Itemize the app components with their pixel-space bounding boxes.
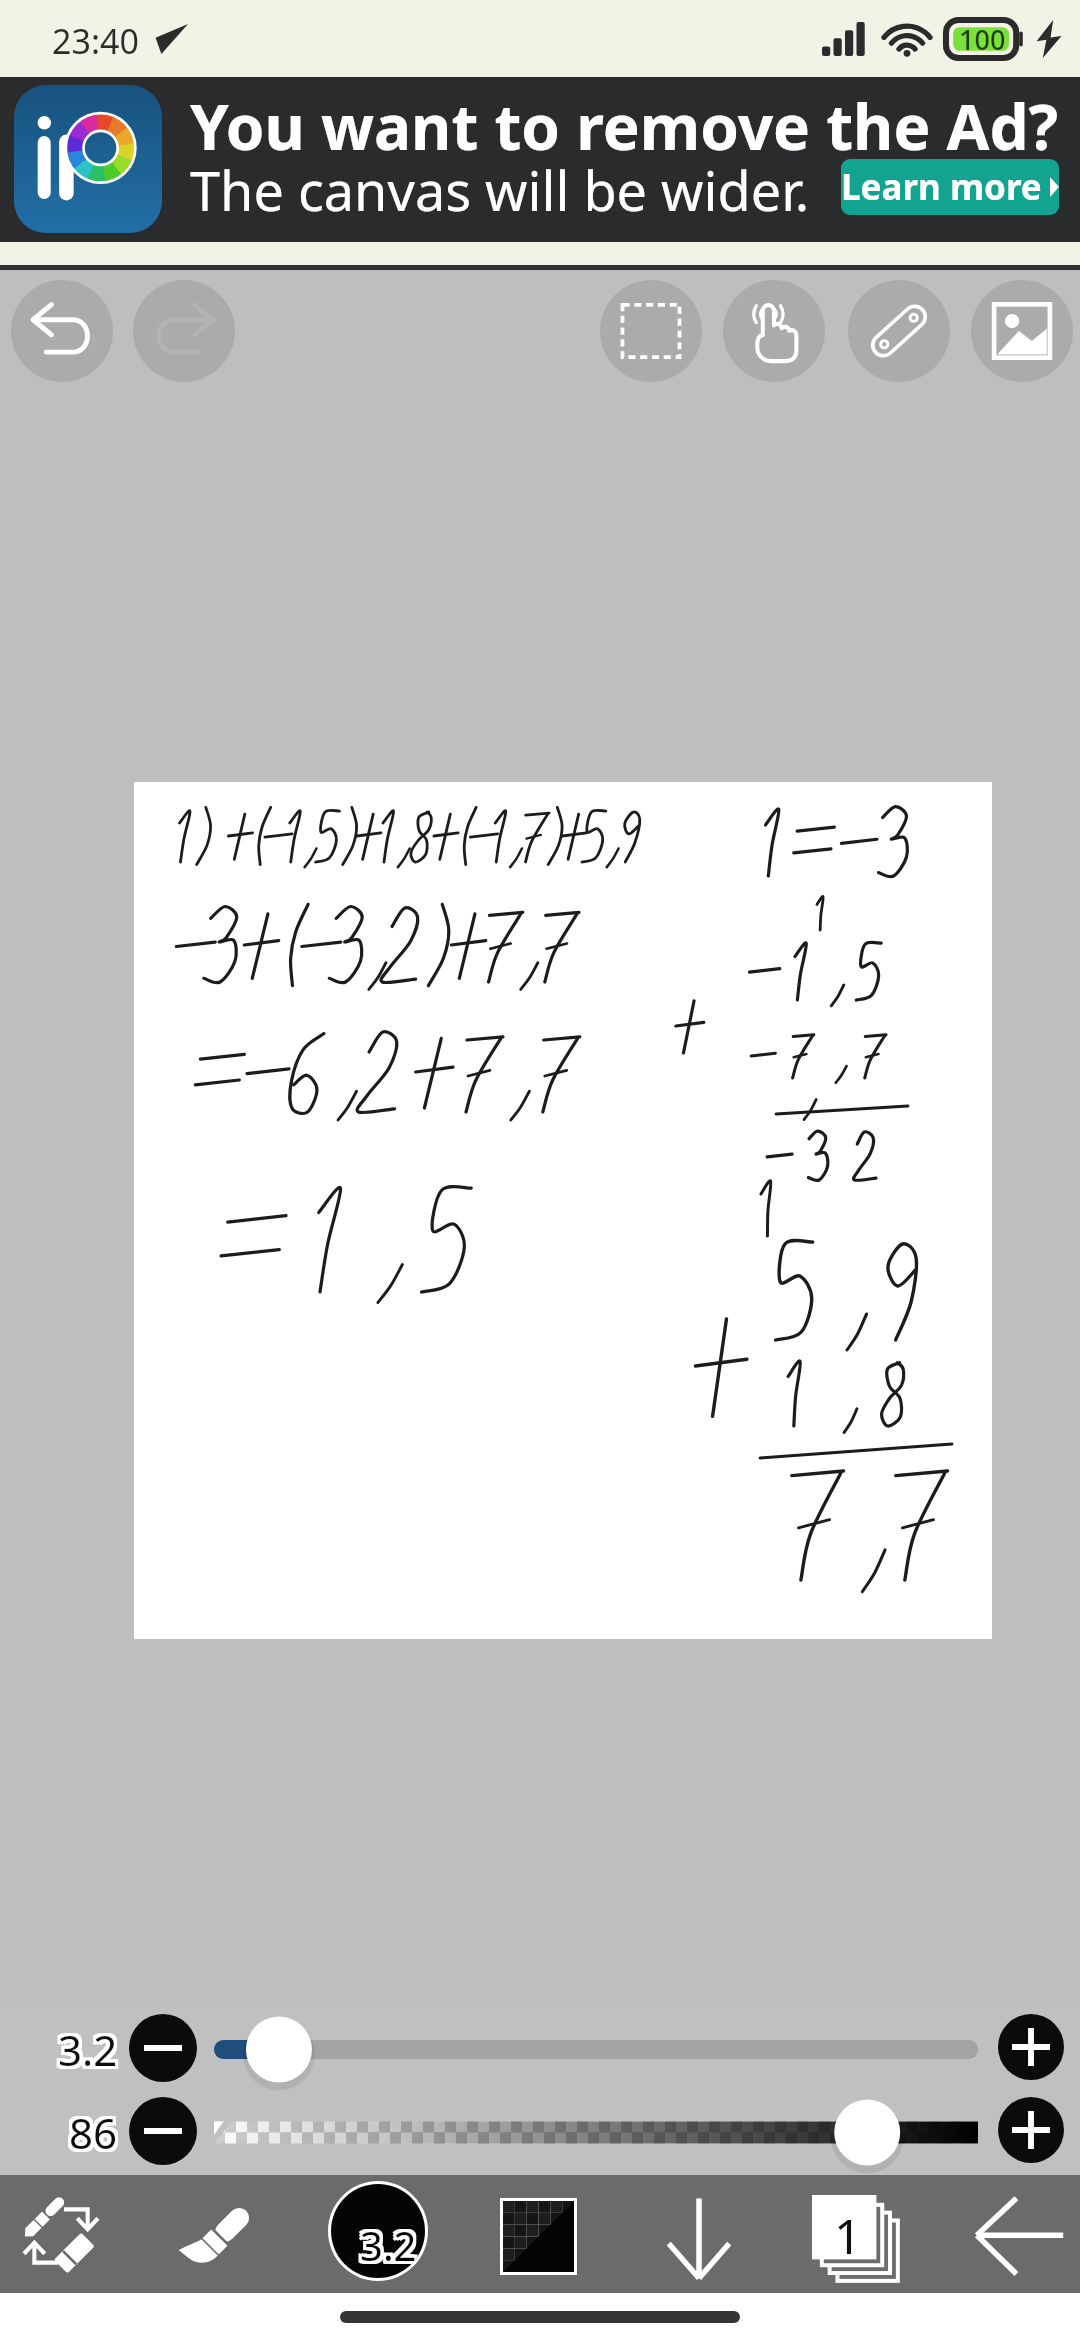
staticText: The canvas will be wider.	[190, 153, 810, 227]
button[interactable]: Colour	[503, 2201, 574, 2272]
staticText: 3.2	[360, 2215, 417, 2269]
staticText: 86	[69, 2104, 118, 2161]
staticText: 3.2	[58, 2021, 118, 2078]
button[interactable]: Selection	[600, 280, 702, 382]
staticText: 86	[72, 2104, 121, 2161]
button[interactable]: 3.2	[328, 2181, 428, 2281]
button[interactable]: Download	[645, 2195, 753, 2280]
staticText: 86	[72, 2101, 121, 2158]
button[interactable]: Increase 86	[998, 2097, 1064, 2163]
staticText: 3.2	[61, 2024, 121, 2081]
button[interactable]: Image	[971, 280, 1073, 382]
staticText: 3.2	[55, 2024, 115, 2081]
staticText: 3.2	[61, 2018, 121, 2075]
staticText: 3.2	[360, 2221, 417, 2275]
staticText: 86	[72, 2107, 121, 2164]
button[interactable]: You want to remove the Ad?	[0, 77, 1080, 242]
button[interactable]: Ruler	[848, 280, 950, 382]
staticText: 3.2	[360, 2218, 417, 2272]
button[interactable]: Swap brush and eraser	[24, 2199, 98, 2273]
button[interactable]	[214, 2008, 978, 2091]
button[interactable]: Decrease 3.2	[129, 2014, 197, 2082]
staticText: 3.2	[357, 2221, 414, 2275]
button[interactable]: Learn more	[841, 159, 1059, 215]
staticText: 86	[66, 2104, 115, 2161]
staticText: 86	[66, 2101, 115, 2158]
button[interactable]: Decrease 86	[129, 2097, 197, 2165]
staticText: 3.2	[357, 2215, 414, 2269]
staticText: 3.2	[363, 2221, 420, 2275]
button[interactable]: Brush	[183, 2200, 257, 2274]
staticText: 86	[69, 2101, 118, 2158]
staticText: 3.2	[363, 2215, 420, 2269]
button[interactable]: Back	[975, 2193, 1065, 2281]
staticText: You want to remove the Ad?	[190, 84, 1059, 168]
staticText: 3.2	[58, 2024, 118, 2081]
button[interactable]: Undo	[11, 280, 113, 382]
staticText: 23:40	[52, 18, 139, 64]
staticText: 3.2	[55, 2018, 115, 2075]
button[interactable]: Redo	[133, 280, 235, 382]
button[interactable]	[214, 2091, 978, 2174]
button[interactable]: Increase 3.2	[998, 2014, 1064, 2080]
staticText: 86	[66, 2107, 115, 2164]
button[interactable]: Layers	[812, 2195, 904, 2287]
staticText: 3.2	[55, 2021, 115, 2078]
staticText: 1	[834, 2203, 862, 2268]
staticText: 3.2	[58, 2018, 118, 2075]
staticText: Learn more	[841, 163, 1042, 211]
staticText: 3.2	[61, 2021, 121, 2078]
staticText: 3.2	[363, 2218, 420, 2272]
staticText: 100	[959, 21, 1006, 58]
staticText: 3.2	[357, 2218, 414, 2272]
button[interactable]: Finger tool	[723, 280, 825, 382]
staticText: 86	[69, 2107, 118, 2164]
